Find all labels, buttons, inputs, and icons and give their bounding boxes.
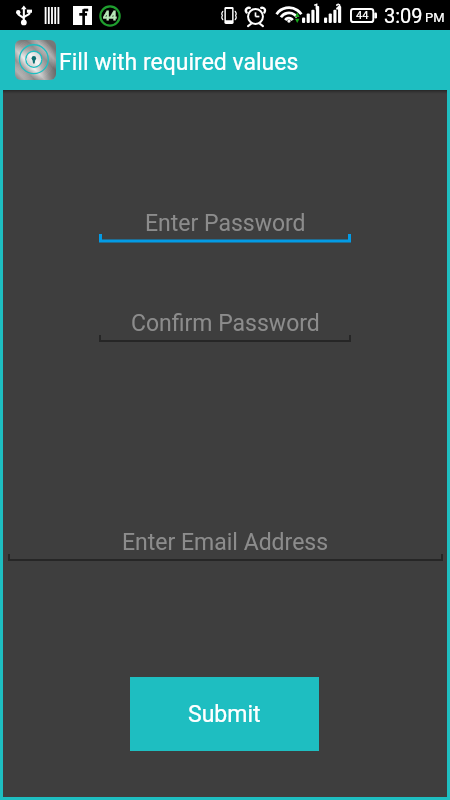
staticText: PM — [425, 10, 445, 25]
staticText: Enter Password — [145, 210, 306, 237]
staticText: Submit — [188, 701, 261, 728]
button[interactable]: Enter Password — [99, 198, 351, 246]
staticText: Enter Email Address — [122, 529, 329, 556]
staticText: Confirm Password — [131, 310, 320, 337]
staticText: 3:09 — [384, 4, 423, 27]
staticText: Fill with required values — [59, 49, 299, 76]
button[interactable]: App icon — [15, 40, 56, 80]
staticText: 1 — [314, 2, 319, 11]
staticText: 44 — [103, 9, 117, 23]
button[interactable]: Enter Email Address — [8, 517, 443, 565]
staticText: 2 — [336, 2, 341, 11]
staticText: 44 — [356, 9, 369, 22]
button[interactable]: Submit — [130, 677, 319, 751]
button[interactable]: Confirm Password — [99, 298, 351, 346]
